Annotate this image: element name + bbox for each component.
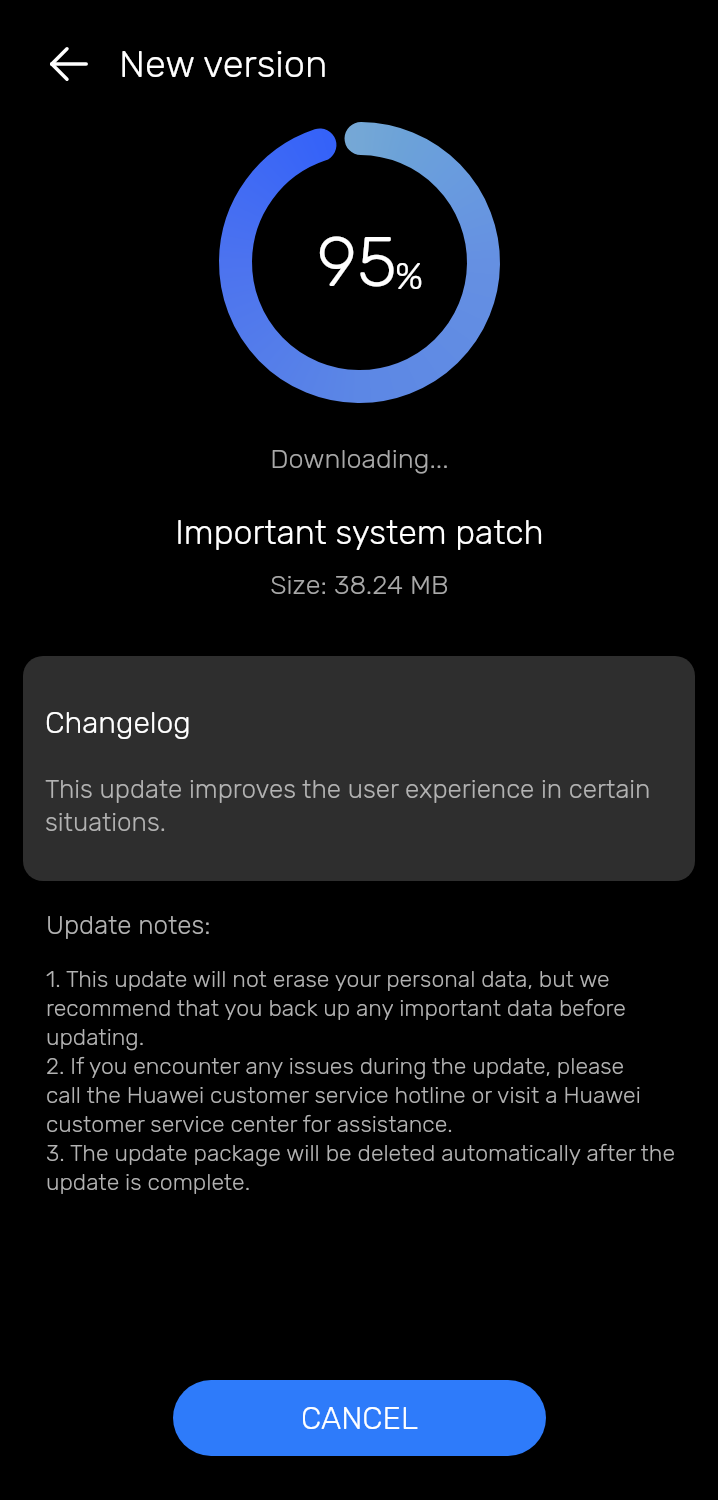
button[interactable]: Changelog [23, 656, 695, 881]
staticText: % [395, 253, 424, 298]
staticText: 95 [317, 221, 398, 304]
staticText: Changelog [45, 705, 191, 741]
staticText: 1. This update will not erase your perso… [46, 965, 675, 1196]
staticText: CANCEL [301, 1400, 418, 1437]
button[interactable]: CANCEL [173, 1380, 546, 1456]
staticText: New version [119, 41, 328, 86]
button[interactable]: Back [47, 42, 91, 86]
staticText: Important system patch [175, 512, 544, 552]
staticText: Update notes: [46, 910, 211, 941]
staticText: Size: 38.24 MB [270, 569, 449, 601]
staticText: Downloading... [270, 443, 449, 475]
staticText: This update improves the user experience… [45, 774, 651, 838]
